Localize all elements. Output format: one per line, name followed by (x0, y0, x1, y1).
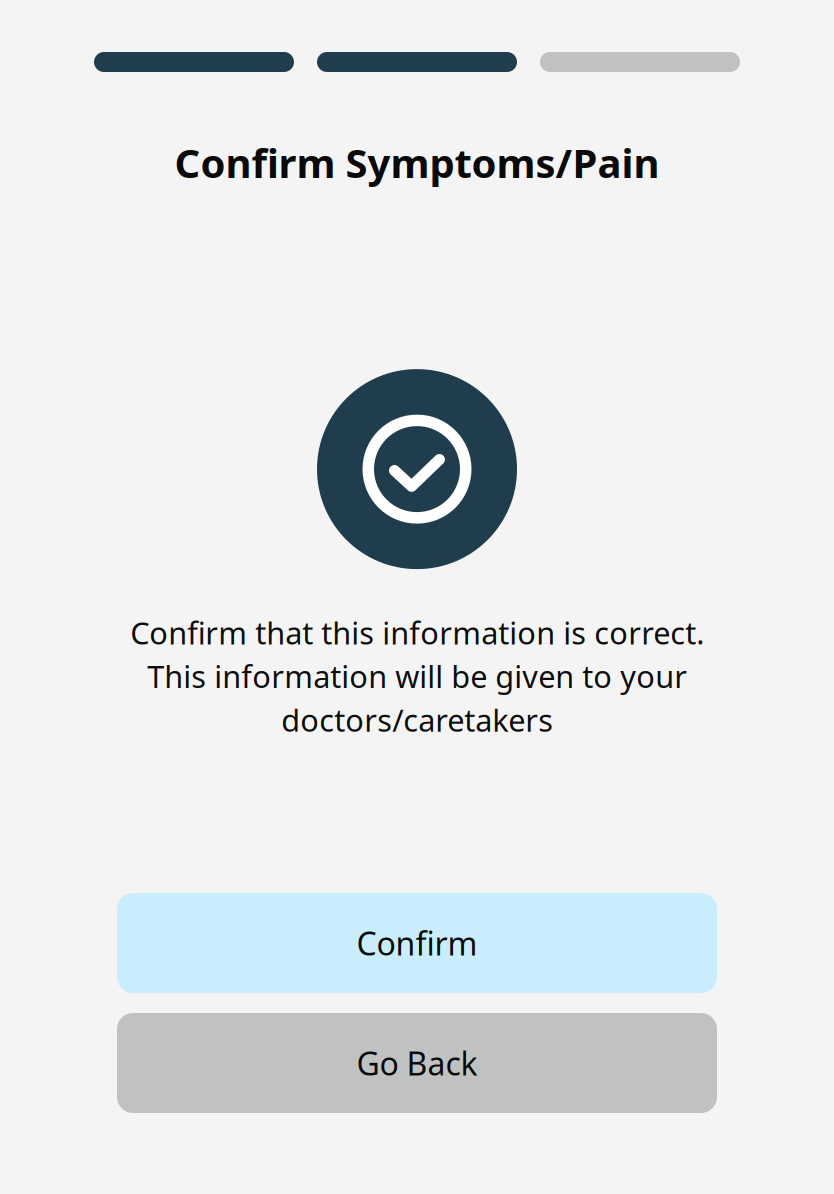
staticText: Go Back (356, 1042, 477, 1084)
staticText: Confirm (356, 922, 477, 964)
staticText: Confirm Symptoms/Pain (174, 136, 659, 189)
staticText: Confirm that this information is correct… (130, 612, 704, 740)
button[interactable]: Go Back (117, 1013, 717, 1113)
button[interactable]: Confirm (117, 893, 717, 993)
